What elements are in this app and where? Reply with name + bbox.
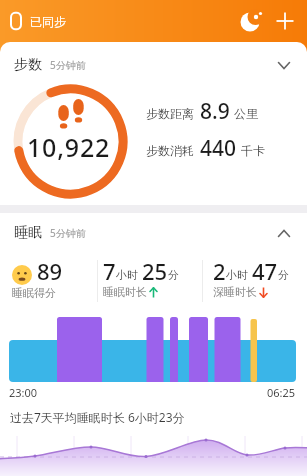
staticText: 5分钟前 bbox=[50, 58, 86, 72]
staticText: 5分钟前 bbox=[50, 226, 86, 240]
staticText: 公里 bbox=[234, 106, 258, 121]
staticText: 7 bbox=[103, 256, 116, 285]
button[interactable]: 步数 bbox=[0, 42, 307, 205]
staticText: 06:25 bbox=[267, 385, 296, 400]
staticText: 23:00 bbox=[9, 385, 38, 400]
staticText: 小时 bbox=[116, 268, 138, 282]
button[interactable] bbox=[273, 9, 297, 33]
button[interactable] bbox=[237, 7, 265, 35]
staticText: 10,922 bbox=[27, 130, 111, 164]
staticText: 分 bbox=[168, 268, 179, 282]
button[interactable]: 睡眠 bbox=[0, 213, 307, 476]
staticText: 千卡 bbox=[241, 143, 265, 158]
staticText: 89 bbox=[37, 256, 63, 286]
staticText: 睡眠时长 bbox=[103, 285, 147, 299]
staticText: 步数 bbox=[14, 56, 42, 74]
staticText: 深睡时长 bbox=[213, 285, 257, 299]
staticText: 2 bbox=[213, 256, 226, 285]
button[interactable] bbox=[273, 54, 295, 76]
staticText: 过去7天平均睡眠时长 6小时23分 bbox=[10, 409, 185, 425]
staticText: 分 bbox=[278, 268, 289, 282]
button[interactable] bbox=[273, 222, 295, 244]
staticText: 小时 bbox=[226, 268, 248, 282]
staticText: 步数距离 bbox=[146, 106, 194, 121]
staticText: 47 bbox=[252, 256, 278, 285]
staticText: 8.9 bbox=[200, 97, 230, 126]
staticText: 25 bbox=[142, 256, 168, 285]
staticText: 步数消耗 bbox=[146, 143, 194, 158]
staticText: 已同步 bbox=[30, 14, 66, 29]
staticText: 睡眠得分 bbox=[12, 286, 56, 300]
staticText: 440 bbox=[200, 134, 237, 163]
staticText: 睡眠 bbox=[14, 224, 42, 242]
